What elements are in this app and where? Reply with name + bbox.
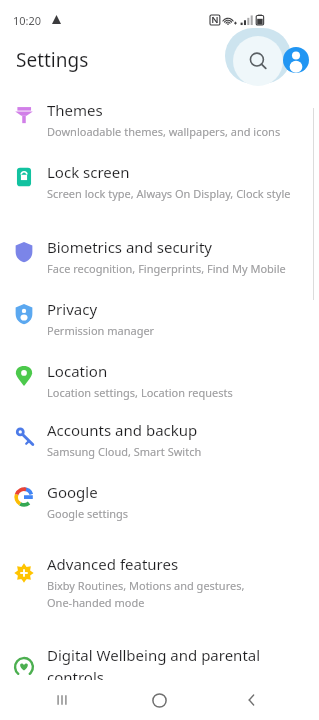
button[interactable]: Search bbox=[236, 39, 280, 83]
button[interactable]: Advanced features bbox=[0, 549, 319, 640]
button[interactable]: Account bbox=[281, 45, 311, 75]
staticText: Bixby Routines, Motions and gestures, bbox=[47, 578, 245, 593]
staticText: Themes bbox=[47, 100, 103, 120]
staticText: Settings bbox=[16, 47, 89, 73]
staticText: One-handed mode bbox=[47, 595, 145, 610]
staticText: Privacy bbox=[47, 299, 98, 319]
button[interactable]: Themes bbox=[0, 95, 319, 157]
button[interactable]: Recents bbox=[48, 686, 76, 714]
staticText: Accounts and backup bbox=[47, 420, 198, 440]
button[interactable]: Location bbox=[0, 356, 319, 418]
staticText: Permission manager bbox=[47, 323, 155, 338]
staticText: Advanced features bbox=[47, 554, 179, 574]
staticText: Downloadable themes, wallpapers, and ico… bbox=[47, 124, 281, 139]
button[interactable]: Back bbox=[238, 686, 266, 714]
button[interactable]: Home bbox=[145, 686, 173, 714]
staticText: Face recognition, Fingerprints, Find My … bbox=[47, 261, 286, 276]
staticText: Biometrics and security bbox=[47, 237, 213, 257]
staticText: Samsung Cloud, Smart Switch bbox=[47, 444, 202, 459]
staticText: Google bbox=[47, 482, 98, 502]
button[interactable]: Privacy bbox=[0, 294, 319, 356]
staticText: Digital Wellbeing and parental bbox=[47, 645, 261, 665]
staticText: 10:20 bbox=[13, 13, 42, 28]
button[interactable]: Accounts and backup bbox=[0, 415, 319, 477]
staticText: controls bbox=[47, 667, 104, 687]
button[interactable]: Lock screen bbox=[0, 157, 319, 219]
staticText: Lock screen bbox=[47, 162, 130, 182]
staticText: Location bbox=[47, 361, 108, 381]
staticText: Location settings, Location requests bbox=[47, 385, 233, 400]
button[interactable]: Google bbox=[0, 477, 319, 539]
button[interactable]: Biometrics and security bbox=[0, 232, 319, 294]
staticText: Screen lock type, Always On Display, Clo… bbox=[47, 186, 291, 201]
staticText: Google settings bbox=[47, 506, 129, 521]
button[interactable]: Digital Wellbeing and parental bbox=[0, 640, 319, 720]
